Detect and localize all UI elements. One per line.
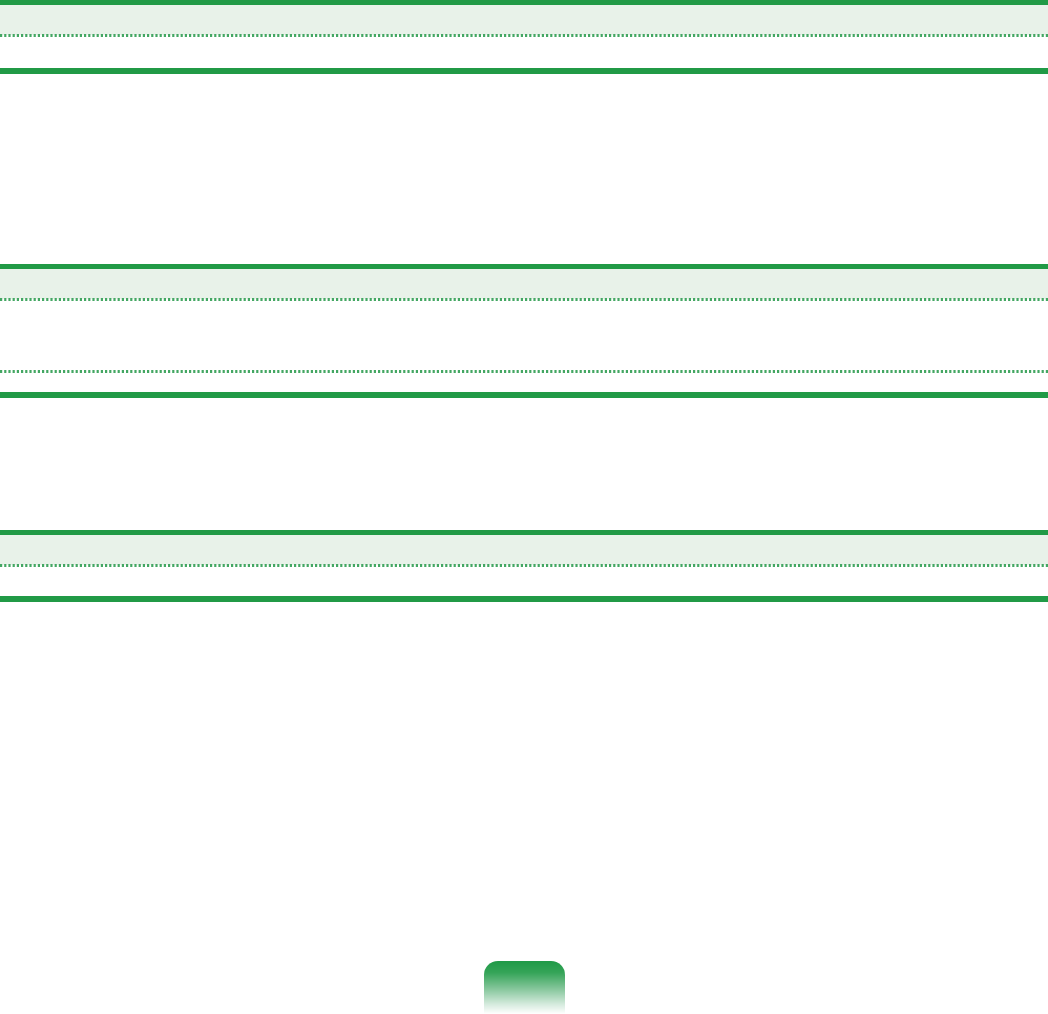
button[interactable]: Scroll indicator	[484, 961, 565, 1014]
